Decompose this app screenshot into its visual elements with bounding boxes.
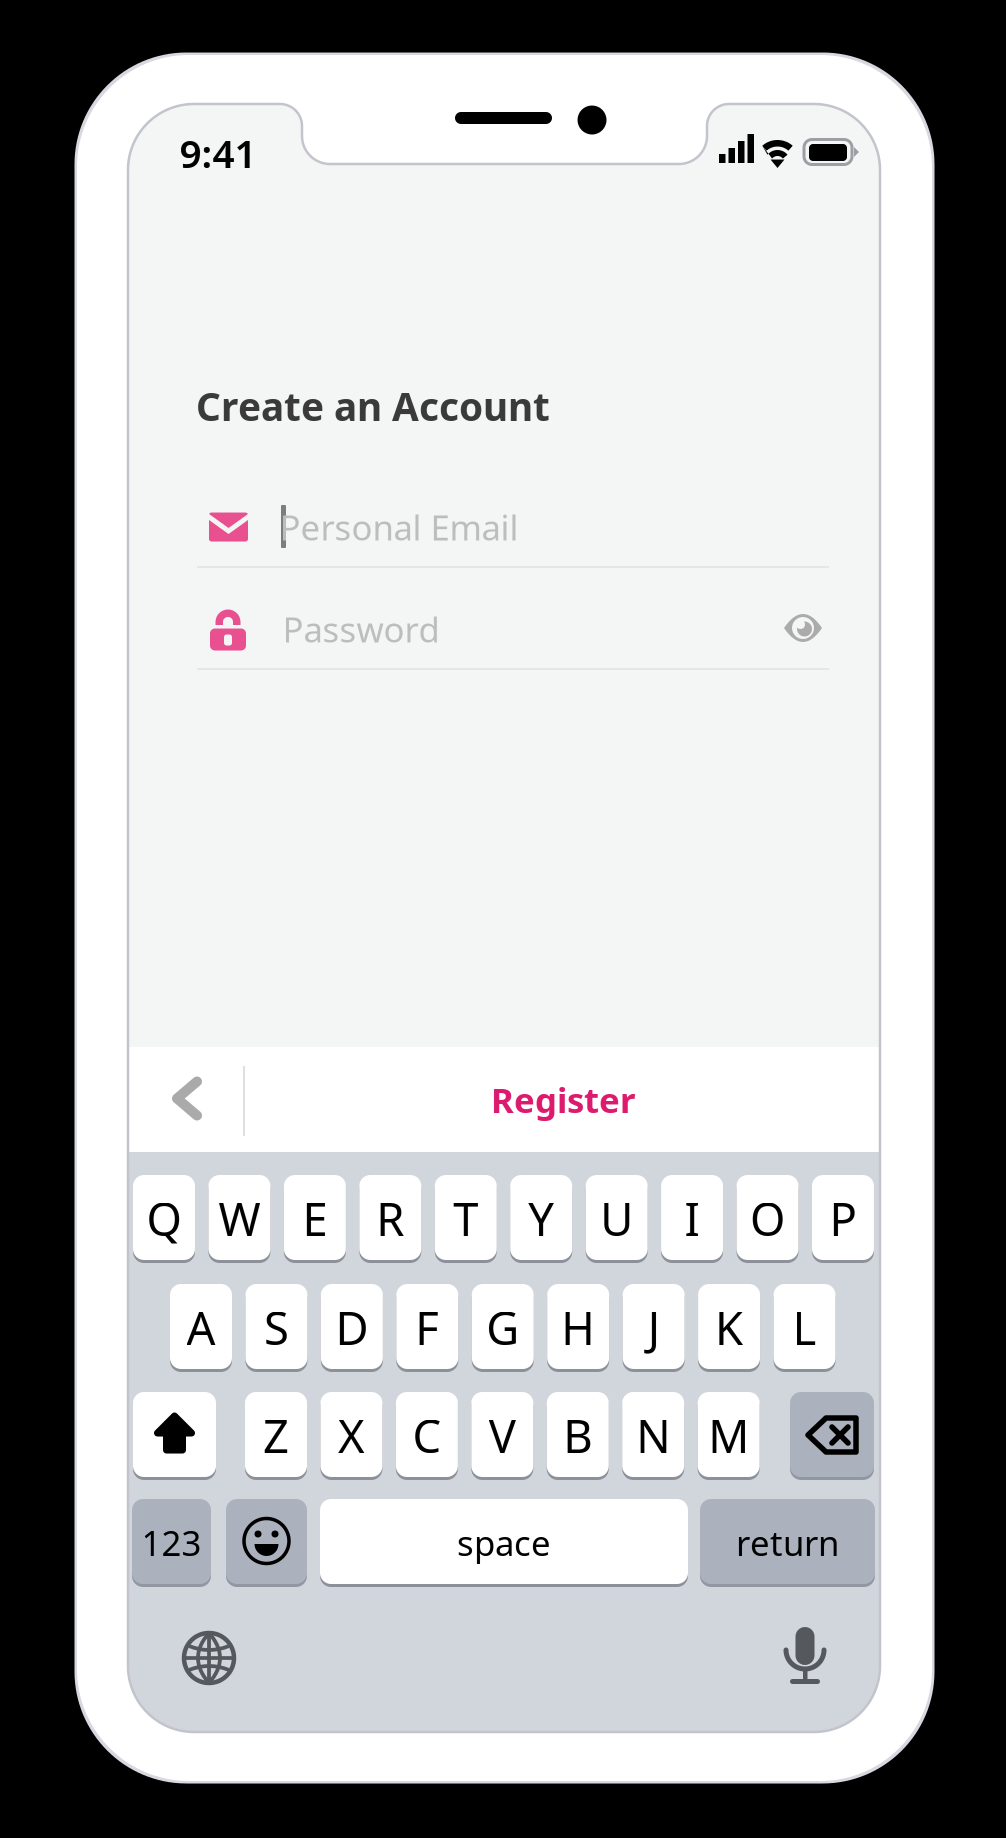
button[interactable]: Previous field (128, 1046, 238, 1151)
button[interactable]: Delete (790, 1392, 874, 1480)
staticText: return (736, 1519, 839, 1565)
staticText: U (600, 1188, 633, 1249)
button[interactable]: L (773, 1284, 835, 1372)
staticText: T (453, 1188, 478, 1249)
staticText: L (792, 1297, 816, 1358)
button[interactable]: V (471, 1392, 533, 1480)
staticText: E (302, 1188, 327, 1249)
staticText: F (415, 1297, 439, 1358)
button[interactable]: K (698, 1284, 760, 1372)
button[interactable]: Show password (765, 590, 841, 666)
staticText: G (486, 1297, 519, 1358)
staticText: S (264, 1297, 289, 1358)
staticText: 9:41 (179, 127, 256, 179)
button[interactable]: P (812, 1175, 874, 1263)
staticText: M (708, 1405, 749, 1466)
button[interactable]: R (359, 1175, 421, 1263)
button[interactable]: T (435, 1175, 497, 1263)
staticText: B (563, 1405, 592, 1466)
button[interactable]: W (208, 1175, 270, 1263)
staticText: D (335, 1297, 368, 1358)
staticText: C (412, 1405, 441, 1466)
button[interactable]: Dictation (767, 1620, 843, 1696)
staticText: A (186, 1297, 215, 1358)
staticText: I (685, 1188, 700, 1249)
staticText: P (829, 1188, 856, 1249)
button[interactable]: Y (510, 1175, 572, 1263)
staticText: 123 (141, 1519, 201, 1565)
staticText: Personal Email (279, 504, 518, 550)
staticText: O (750, 1188, 785, 1249)
staticText: V (489, 1405, 516, 1466)
staticText: N (636, 1405, 670, 1466)
button[interactable]: Password (197, 586, 743, 672)
button[interactable]: A (170, 1284, 232, 1372)
staticText: Register (491, 1076, 635, 1122)
button[interactable]: X (320, 1392, 382, 1480)
button[interactable]: D (321, 1284, 383, 1372)
button[interactable]: Register (403, 1046, 723, 1151)
button[interactable]: B (547, 1392, 609, 1480)
button[interactable]: Personal Email (197, 484, 829, 570)
button[interactable]: Next keyboard (171, 1620, 247, 1696)
staticText: K (715, 1297, 743, 1358)
staticText: space (457, 1519, 551, 1565)
staticText: Y (528, 1188, 554, 1249)
staticText: Password (282, 606, 439, 652)
button[interactable]: O (736, 1175, 798, 1263)
button[interactable]: N (622, 1392, 684, 1480)
button[interactable]: C (396, 1392, 458, 1480)
button[interactable]: J (623, 1284, 685, 1372)
button[interactable]: Q (133, 1175, 195, 1263)
staticText: Z (263, 1405, 289, 1466)
staticText: Q (146, 1188, 181, 1249)
button[interactable]: return (700, 1499, 875, 1587)
button[interactable]: E (284, 1175, 346, 1263)
button[interactable]: space (320, 1499, 688, 1587)
staticText: J (648, 1297, 660, 1358)
button[interactable]: U (586, 1175, 648, 1263)
button[interactable]: Emoji keyboard (226, 1499, 307, 1587)
button[interactable]: M (698, 1392, 760, 1480)
button[interactable]: S (245, 1284, 307, 1372)
button[interactable]: 123 (132, 1499, 211, 1587)
staticText: W (218, 1188, 260, 1249)
staticText: X (338, 1405, 365, 1466)
button[interactable]: Shift (133, 1392, 216, 1480)
button[interactable]: Z (245, 1392, 307, 1480)
button[interactable]: I (661, 1175, 723, 1263)
button[interactable]: H (547, 1284, 609, 1372)
staticText: Create an Account (196, 380, 550, 432)
staticText: H (561, 1297, 595, 1358)
staticText: R (376, 1188, 404, 1249)
button[interactable]: F (396, 1284, 458, 1372)
button[interactable]: G (472, 1284, 534, 1372)
